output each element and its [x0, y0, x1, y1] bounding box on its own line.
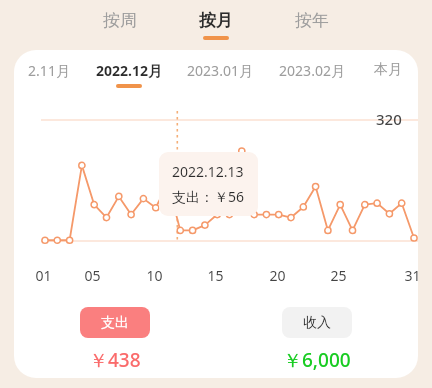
- staticText: 2022.12月: [96, 61, 162, 80]
- button[interactable]: 按年: [264, 0, 360, 48]
- staticText: 320: [376, 109, 402, 129]
- staticText: 10: [146, 266, 163, 285]
- button[interactable]: 支出: [80, 307, 150, 338]
- button[interactable]: 按月: [168, 0, 264, 48]
- button[interactable]: 2023.01月: [174, 50, 266, 95]
- staticText: 收入: [303, 314, 331, 332]
- staticText: ￥438: [89, 347, 141, 373]
- staticText: 按年: [295, 10, 329, 31]
- staticText: 15: [207, 266, 224, 285]
- staticText: 按月: [199, 10, 233, 31]
- button[interactable]: 收入: [282, 307, 352, 338]
- staticText: 2023.02月: [279, 61, 345, 80]
- staticText: 2022.12.13: [172, 162, 244, 181]
- button[interactable]: 本月: [358, 50, 418, 95]
- staticText: 2023.01月: [187, 61, 253, 80]
- button[interactable]: 2022.12.13: [159, 152, 258, 216]
- button[interactable]: 2022.12月: [84, 50, 174, 95]
- staticText: 05: [84, 266, 101, 285]
- staticText: 01: [35, 266, 52, 285]
- staticText: 2.11月: [28, 61, 70, 80]
- staticText: 本月: [374, 61, 402, 79]
- button[interactable]: 2.11月: [14, 50, 84, 95]
- staticText: 20: [269, 266, 286, 285]
- button[interactable]: 2023.02月: [266, 50, 358, 95]
- staticText: 支出: [101, 314, 129, 332]
- staticText: ￥6,000: [283, 347, 351, 373]
- staticText: 支出：￥56: [172, 187, 245, 206]
- staticText: 25: [330, 266, 347, 285]
- staticText: 31: [404, 266, 418, 285]
- staticText: 按周: [103, 10, 137, 31]
- button[interactable]: 按周: [72, 0, 168, 48]
